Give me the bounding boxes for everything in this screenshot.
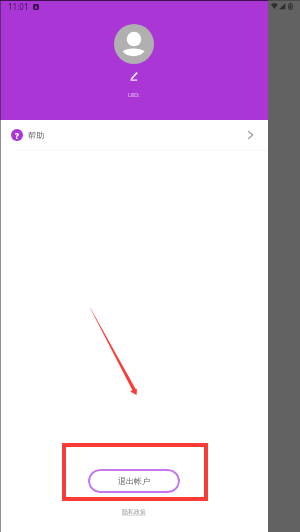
button[interactable]: 隐私政策	[122, 508, 146, 516]
staticText: 退出帐户	[118, 476, 150, 486]
button[interactable]: ?	[0, 120, 268, 149]
button[interactable]: Edit profile	[130, 72, 139, 81]
staticText: UID:	[128, 91, 140, 98]
button[interactable]: 退出帐户	[88, 469, 180, 493]
staticText: 11:01	[8, 1, 29, 12]
staticText: 帮助	[28, 130, 44, 140]
staticText: ?	[15, 130, 19, 141]
